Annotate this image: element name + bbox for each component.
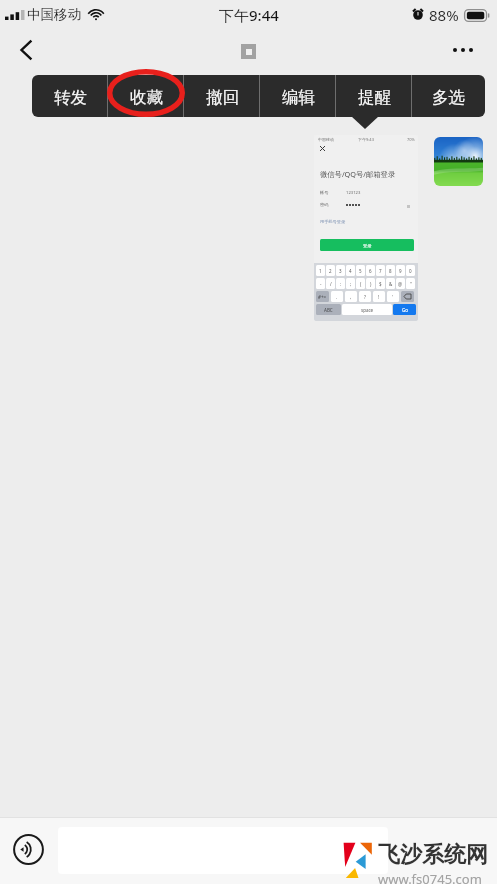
staticText: 飞沙系统网 (378, 841, 488, 869)
staticText: space (361, 307, 374, 313)
button[interactable]: 转发 (32, 75, 108, 117)
button[interactable]: 提醒 (336, 75, 412, 117)
staticText: . (336, 294, 338, 300)
staticText: / (330, 281, 332, 287)
staticText: 编辑 (282, 87, 315, 108)
button[interactable] (58, 827, 388, 874)
button[interactable]: Back (9, 32, 45, 68)
button[interactable] (434, 137, 483, 186)
staticText: 6 (369, 268, 372, 274)
staticText: & (389, 281, 393, 287)
button[interactable]: More options (444, 31, 482, 69)
staticText: 下午9:43 (358, 137, 374, 142)
staticText: 用手机号登录 (320, 219, 346, 224)
button[interactable]: 多选 (412, 75, 485, 117)
staticText: " (410, 281, 412, 287)
button[interactable]: Voice input (13, 834, 44, 865)
staticText: 8 (389, 268, 392, 274)
staticText: - (320, 281, 322, 287)
staticText: 4 (349, 268, 352, 274)
staticText: 1 (319, 268, 322, 274)
staticText: ? (364, 294, 366, 300)
button[interactable]: 撤回 (184, 75, 260, 117)
staticText: 登录 (363, 243, 372, 248)
staticText: @ (398, 281, 403, 287)
staticText: 下午9:44 (219, 5, 279, 25)
staticText: ) (370, 281, 372, 287)
staticText: , (350, 294, 352, 300)
staticText: 撤回 (206, 87, 239, 108)
staticText: 密码 (320, 202, 329, 207)
staticText: ' (392, 294, 394, 300)
staticText: 转发 (54, 87, 87, 108)
staticText: #+= (318, 294, 327, 300)
staticText: ABC (324, 307, 333, 313)
staticText: 微信号/QQ号/邮箱登录 (320, 169, 396, 179)
staticText: 5 (359, 268, 362, 274)
staticText: 7 (379, 268, 382, 274)
staticText: 收藏 (130, 87, 163, 108)
staticText: www.fs0745.com (378, 870, 482, 884)
staticText: 9 (399, 268, 402, 274)
staticText: 中国移动 (318, 137, 334, 142)
staticText: ; (350, 281, 352, 287)
button[interactable]: 收藏 (108, 75, 184, 117)
staticText: 中国移动 (27, 6, 81, 23)
staticText: 多选 (432, 87, 465, 108)
staticText: 70% (407, 137, 415, 142)
staticText: 2 (329, 268, 332, 274)
staticText: 提醒 (358, 87, 391, 108)
staticText: : (340, 281, 342, 287)
staticText: 123123 (346, 190, 361, 196)
staticText: 3 (339, 268, 342, 274)
button[interactable]: 中国移动 (314, 135, 418, 321)
staticText: ! (378, 294, 380, 300)
staticText: $ (379, 281, 382, 287)
staticText: ( (360, 281, 362, 287)
staticText: Go (402, 307, 408, 313)
staticText: 88% (429, 5, 459, 25)
button[interactable]: 编辑 (260, 75, 336, 117)
staticText: 0 (409, 268, 412, 274)
staticText: 帐号 (320, 190, 329, 195)
